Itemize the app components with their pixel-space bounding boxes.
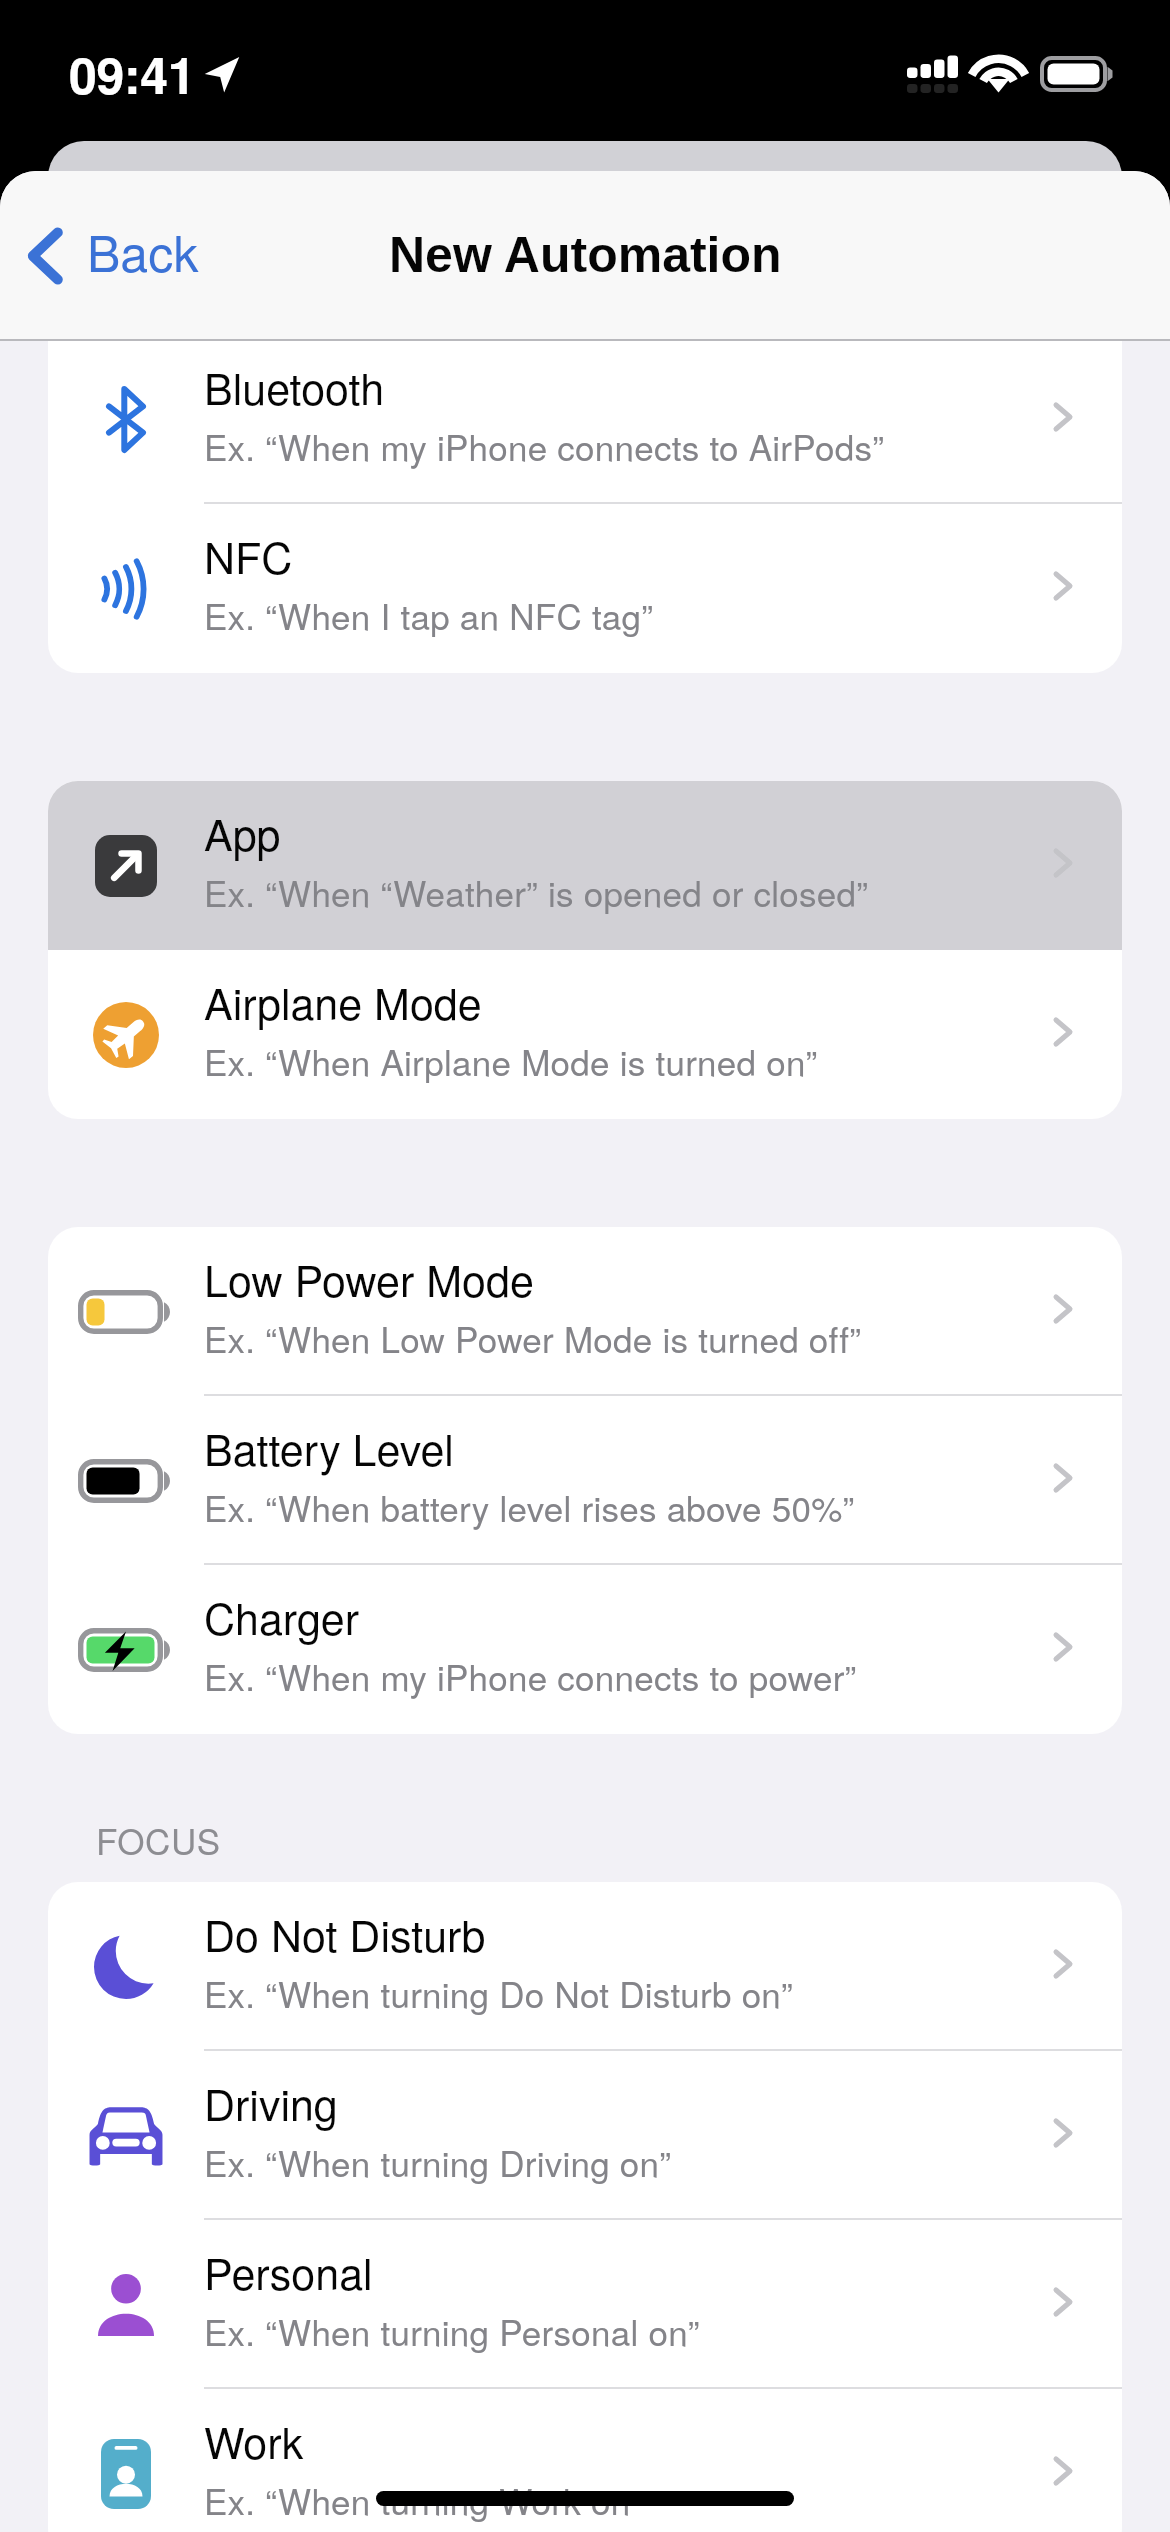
staticText: Back — [87, 215, 199, 287]
staticText: Do Not Disturb — [204, 1903, 486, 1965]
staticText: Bluetooth — [204, 356, 385, 418]
staticText: Ex. “When turning Work on” — [204, 2475, 643, 2525]
button[interactable]: Work — [48, 2389, 1122, 2532]
button[interactable]: NFC — [48, 504, 1122, 673]
button[interactable]: Low Power Mode — [48, 1227, 1122, 1396]
staticText: Work — [204, 2410, 304, 2472]
button[interactable]: Bluetooth — [48, 335, 1122, 504]
staticText: Battery Level — [204, 1417, 454, 1479]
button[interactable]: App — [48, 781, 1122, 950]
staticText: App — [204, 802, 281, 864]
button[interactable]: Back — [0, 204, 217, 308]
staticText: Ex. “When Low Power Mode is turned off” — [204, 1313, 862, 1363]
staticText: Ex. “When my iPhone connects to power” — [204, 1651, 857, 1701]
staticText: Airplane Mode — [204, 971, 482, 1033]
button[interactable]: Charger — [48, 1565, 1122, 1734]
staticText: Ex. “When my iPhone connects to AirPods” — [204, 421, 885, 471]
staticText: New Automation — [389, 227, 782, 283]
staticText: Ex. “When turning Personal on” — [204, 2306, 700, 2356]
button[interactable]: Airplane Mode — [48, 950, 1122, 1119]
staticText: Ex. “When Airplane Mode is turned on” — [204, 1036, 818, 1086]
staticText: Charger — [204, 1586, 360, 1648]
staticText: Ex. “When battery level rises above 50%” — [204, 1482, 855, 1532]
button[interactable]: Driving — [48, 2051, 1122, 2220]
staticText: Ex. “When I tap an NFC tag” — [204, 590, 654, 640]
staticText: Personal — [204, 2241, 373, 2303]
staticText: NFC — [204, 525, 293, 587]
staticText: Ex. “When turning Driving on” — [204, 2137, 672, 2187]
button[interactable]: Battery Level — [48, 1396, 1122, 1565]
button[interactable]: Do Not Disturb — [48, 1882, 1122, 2051]
button[interactable]: Personal — [48, 2220, 1122, 2389]
staticText: Low Power Mode — [204, 1248, 534, 1310]
staticText: Driving — [204, 2072, 338, 2134]
staticText: Ex. “When “Weather” is opened or closed” — [204, 867, 869, 917]
staticText: Ex. “When turning Do Not Disturb on” — [204, 1968, 793, 2018]
staticText: 09:41 — [69, 38, 196, 110]
staticText: FOCUS — [96, 1815, 221, 1865]
